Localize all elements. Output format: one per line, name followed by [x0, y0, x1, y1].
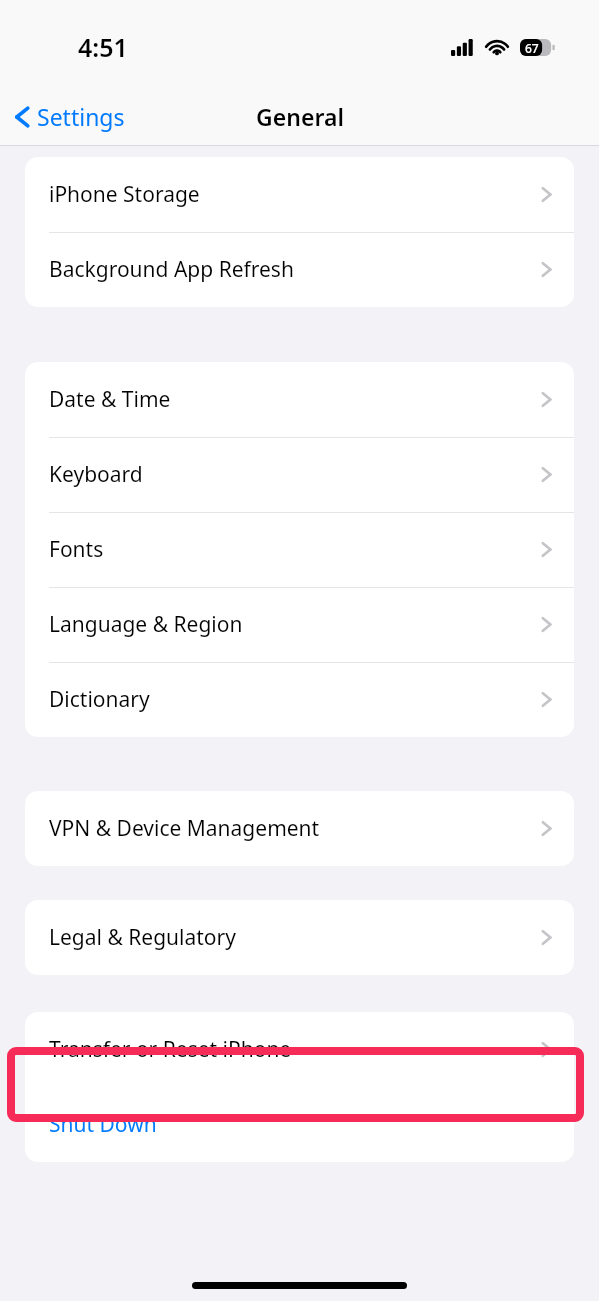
button[interactable]: Keyboard: [25, 437, 574, 512]
button[interactable]: Language & Region: [25, 587, 574, 662]
button[interactable]: Fonts: [25, 512, 574, 587]
staticText: Language & Region: [49, 610, 243, 639]
button[interactable]: VPN & Device Management: [25, 791, 574, 866]
staticText: 4:51: [78, 30, 128, 64]
staticText: iPhone Storage: [49, 180, 200, 209]
button[interactable]: Transfer or Reset iPhone: [25, 1012, 574, 1087]
button[interactable]: Shut Down: [25, 1087, 574, 1162]
staticText: Transfer or Reset iPhone: [49, 1035, 292, 1064]
staticText: Date & Time: [49, 385, 171, 414]
staticText: Dictionary: [49, 685, 150, 714]
staticText: Fonts: [49, 535, 104, 564]
button[interactable]: iPhone Storage: [25, 157, 574, 232]
staticText: VPN & Device Management: [49, 814, 320, 843]
staticText: Shut Down: [49, 1110, 157, 1139]
button[interactable]: Legal & Regulatory: [25, 900, 574, 975]
button[interactable]: Background App Refresh: [25, 232, 574, 307]
staticText: Background App Refresh: [49, 255, 294, 284]
staticText: Keyboard: [49, 460, 143, 489]
staticText: Settings: [37, 101, 125, 132]
staticText: Legal & Regulatory: [49, 923, 236, 952]
button[interactable]: Back to Settings: [9, 97, 129, 136]
button[interactable]: Dictionary: [25, 662, 574, 737]
staticText: General: [256, 101, 344, 132]
button[interactable]: Date & Time: [25, 362, 574, 437]
staticText: 67: [525, 40, 539, 56]
